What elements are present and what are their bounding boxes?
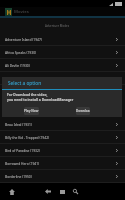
staticText: Borrowed Hero (1941)	[5, 161, 40, 165]
button[interactable]: Movies	[0, 7, 125, 16]
button[interactable]: Home	[7, 187, 16, 196]
button[interactable]: Back	[43, 187, 52, 196]
staticText: you need to install a DownloadManager	[7, 97, 74, 102]
button[interactable]: Borrowed Hero (1941)	[0, 157, 125, 170]
button[interactable]: Download	[76, 107, 90, 115]
button[interactable]: Ali Devlin (1930)	[0, 59, 125, 72]
staticText: Borderline (1950)	[5, 174, 32, 178]
button[interactable]: Bird of Paradise (1932)	[0, 144, 125, 157]
staticText: Movies	[14, 9, 29, 15]
staticText: Adventure Island (1947)	[5, 37, 42, 41]
button[interactable]: Adventure Island (1947)	[0, 33, 125, 46]
button[interactable]: Billy the Kid - Trapped (1942)	[0, 131, 125, 144]
button[interactable]: Borderline (1950)	[0, 170, 125, 183]
staticText: Ali Devlin (1930)	[5, 63, 30, 67]
button[interactable]: Africa Speaks (1930)	[0, 46, 125, 59]
staticText: Beau Ideal (1931)	[5, 122, 32, 126]
staticText: Billy the Kid - Trapped (1942)	[5, 135, 50, 139]
staticText: Africa Speaks (1930)	[5, 50, 37, 54]
button[interactable]: Play Now	[24, 107, 39, 115]
staticText: For Download the video,	[7, 92, 48, 97]
staticText: Bird of Paradise (1932)	[5, 148, 40, 152]
staticText: Download	[76, 109, 90, 113]
button[interactable]: Recents	[58, 187, 67, 196]
button[interactable]: Search	[71, 187, 80, 196]
staticText: Play Now	[24, 109, 39, 113]
staticText: Adventure Modes	[45, 24, 70, 28]
staticText: Select a option	[8, 80, 42, 86]
staticText: American Adventure (1644)	[5, 76, 48, 80]
button[interactable]: American Adventure (1644)	[0, 72, 125, 85]
button[interactable]: Beau Ideal (1931)	[0, 118, 125, 131]
